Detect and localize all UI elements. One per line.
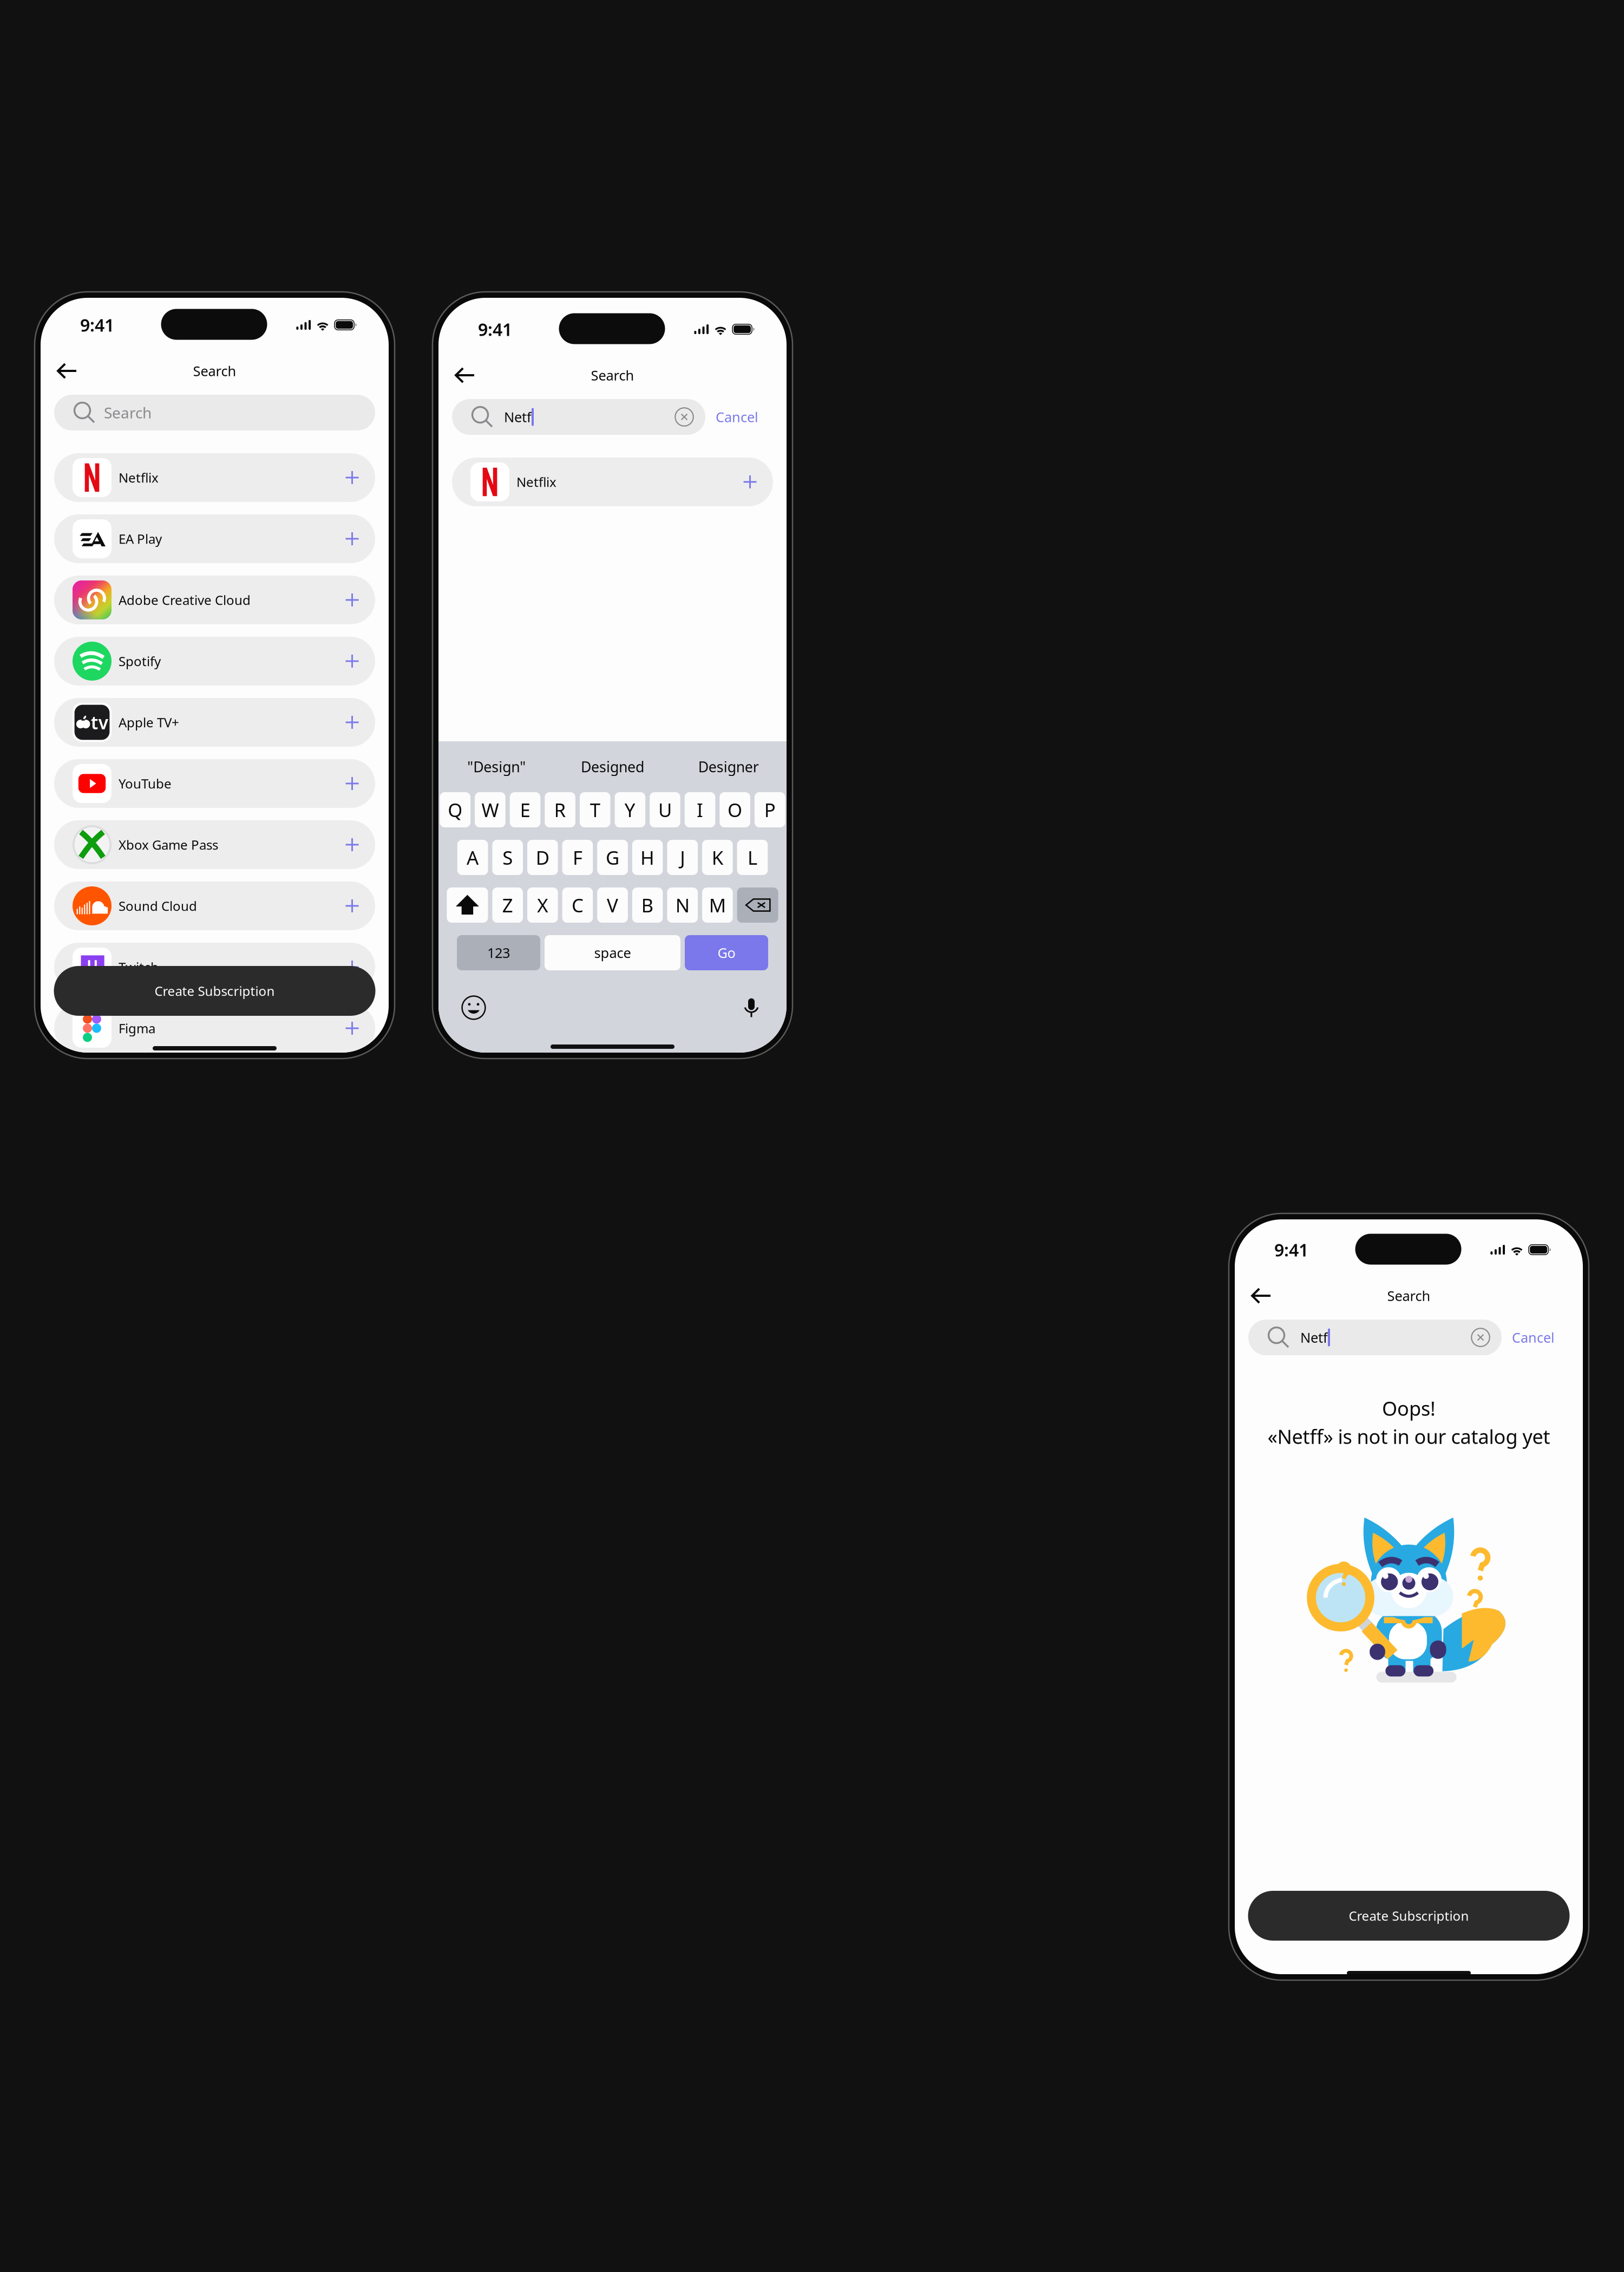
button[interactable]: space xyxy=(545,935,680,970)
button[interactable]: Clear search text xyxy=(675,407,694,427)
staticText: Search xyxy=(104,403,152,423)
staticText: Create Subscription xyxy=(155,982,275,1000)
button[interactable]: Spotify xyxy=(54,637,375,685)
button[interactable]: Create Subscription xyxy=(54,966,375,1016)
button[interactable]: Back xyxy=(57,356,90,386)
button[interactable]: Back xyxy=(455,361,488,390)
button[interactable]: G xyxy=(597,840,628,875)
button[interactable]: I xyxy=(685,792,715,827)
staticText: G xyxy=(606,845,619,870)
button[interactable]: B xyxy=(632,887,663,923)
staticText: X xyxy=(537,893,548,918)
staticText: 9:41 xyxy=(1274,1238,1308,1261)
button[interactable]: H xyxy=(632,840,663,875)
staticText: K xyxy=(712,845,723,870)
button[interactable]: EA Play xyxy=(54,514,375,563)
staticText: Designed xyxy=(581,757,644,776)
button[interactable]: Sound Cloud xyxy=(54,882,375,930)
staticText: Y xyxy=(625,797,635,822)
button[interactable]: Create Subscription xyxy=(1248,1891,1570,1941)
button[interactable]: D xyxy=(527,840,558,875)
staticText: H xyxy=(640,845,655,870)
staticText: U xyxy=(658,797,672,822)
staticText: J xyxy=(680,845,685,870)
button[interactable]: Netflix xyxy=(452,458,773,506)
button[interactable]: F xyxy=(562,840,593,875)
button[interactable]: E xyxy=(510,792,540,827)
button[interactable]: M xyxy=(702,887,733,923)
staticText: Search xyxy=(193,362,236,380)
staticText: space xyxy=(594,944,631,962)
button[interactable]: Go xyxy=(685,935,768,970)
staticText: R xyxy=(554,797,566,822)
staticText: Xbox Game Pass xyxy=(119,836,218,853)
button[interactable]: 123 xyxy=(457,935,540,970)
button[interactable]: J xyxy=(667,840,698,875)
staticText: S xyxy=(502,845,513,870)
button[interactable]: K xyxy=(702,840,733,875)
staticText: Z xyxy=(502,893,513,918)
staticText: T xyxy=(590,797,600,822)
button[interactable]: L xyxy=(737,840,768,875)
button[interactable]: Q xyxy=(440,792,470,827)
staticText: Netf xyxy=(504,408,532,426)
button[interactable]: Dictate xyxy=(739,995,764,1020)
button[interactable]: Clear search text xyxy=(1471,1328,1490,1347)
button[interactable]: Emoji keyboard xyxy=(461,995,486,1020)
staticText: 9:41 xyxy=(80,313,114,336)
staticText: E xyxy=(520,797,530,822)
staticText: Sound Cloud xyxy=(119,897,197,915)
staticText: Figma xyxy=(119,1020,155,1037)
staticText: Spotify xyxy=(119,653,161,670)
button[interactable]: Cancel xyxy=(1502,1320,1565,1355)
staticText: B xyxy=(641,893,654,918)
button[interactable]: P xyxy=(755,792,785,827)
button[interactable]: Xbox Game Pass xyxy=(54,820,375,869)
button[interactable]: Z xyxy=(492,887,523,923)
button[interactable]: N xyxy=(667,887,698,923)
button[interactable]: Netflix xyxy=(54,453,375,502)
button[interactable]: T xyxy=(580,792,610,827)
button[interactable]: Back xyxy=(1251,1281,1285,1310)
staticText: N xyxy=(675,893,689,918)
staticText: Designer xyxy=(698,757,759,776)
staticText: Go xyxy=(718,944,735,962)
staticText: F xyxy=(573,845,582,870)
staticText: V xyxy=(607,893,618,918)
button[interactable]: Figma xyxy=(54,1004,375,1053)
button[interactable]: Shift xyxy=(447,887,488,923)
button[interactable]: C xyxy=(562,887,593,923)
staticText: Oops! xyxy=(1382,1395,1436,1421)
button[interactable]: Adobe Creative Cloud xyxy=(54,576,375,624)
staticText: Adobe Creative Cloud xyxy=(119,591,251,609)
staticText: Cancel xyxy=(1512,1328,1555,1347)
button[interactable]: O xyxy=(720,792,750,827)
button[interactable]: U xyxy=(650,792,680,827)
staticText: Netflix xyxy=(119,469,159,486)
staticText: «Netff» is not in our catalog yet xyxy=(1268,1423,1550,1449)
button[interactable]: V xyxy=(597,887,628,923)
button[interactable]: YouTube xyxy=(54,759,375,808)
staticText: YouTube xyxy=(119,775,172,792)
button[interactable]: A xyxy=(457,840,488,875)
staticText: EA Play xyxy=(119,530,162,547)
staticText: Netf xyxy=(1300,1328,1328,1347)
staticText: Twitch xyxy=(119,958,159,976)
button[interactable]: R xyxy=(545,792,575,827)
staticText: 123 xyxy=(487,944,510,962)
staticText: "Design" xyxy=(467,757,526,776)
button[interactable]: Cancel xyxy=(705,399,769,435)
staticText: 9:41 xyxy=(478,318,512,341)
staticText: Apple TV+ xyxy=(119,714,179,731)
button[interactable]: tv xyxy=(54,698,375,747)
staticText: O xyxy=(728,797,742,822)
staticText: Search xyxy=(591,366,634,384)
button[interactable]: S xyxy=(492,840,523,875)
button[interactable]: W xyxy=(475,792,505,827)
button[interactable]: Delete xyxy=(737,887,778,923)
button[interactable]: Twitch xyxy=(54,943,375,991)
staticText: L xyxy=(748,845,757,870)
button[interactable]: X xyxy=(527,887,558,923)
staticText: tv xyxy=(91,710,108,734)
button[interactable]: Y xyxy=(615,792,645,827)
